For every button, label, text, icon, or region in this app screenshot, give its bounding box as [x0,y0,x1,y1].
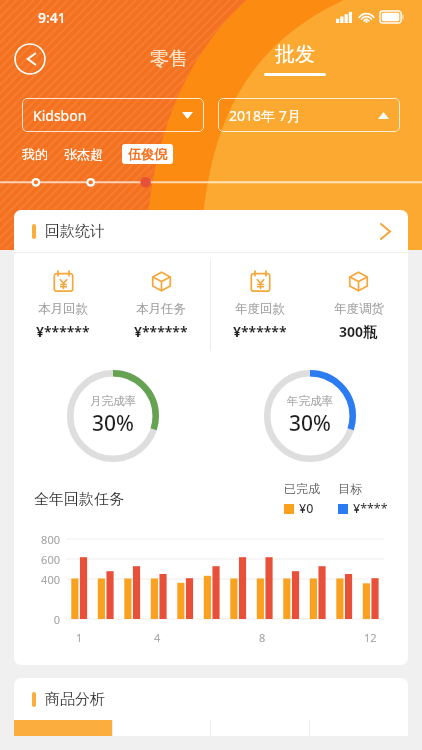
staticText: 零售 [150,47,188,71]
staticText: 600 [14,552,60,567]
button[interactable]: 零售 [138,43,200,75]
staticText: 12 [364,630,377,645]
button[interactable]: 2018年 7月 [218,98,400,132]
button[interactable]: Kidsbon [22,98,204,132]
button[interactable]: 本月任务 [112,253,210,357]
staticText: 400 [14,572,60,587]
staticText: 2018年 7月 [229,106,301,125]
button[interactable]: 张杰超 [64,146,103,162]
staticText: 4 [154,630,161,645]
button[interactable]: 回款统计 [14,210,408,252]
staticText: ¥****** [134,322,188,341]
staticText: 年度回款 [235,301,285,317]
staticText: 回款统计 [45,222,105,241]
button[interactable]: 批发 [254,42,336,76]
staticText: 年完成率 [287,394,333,408]
staticText: Kidsbon [33,106,87,125]
staticText: 全年回款任务 [34,490,124,509]
button[interactable]: Back [14,43,46,75]
staticText: 9:41 [38,8,66,27]
staticText: 本月回款 [38,301,88,317]
staticText: 伍俊倪 [128,146,167,162]
staticText: 8 [259,630,266,645]
staticText: 目标 [338,481,362,496]
button[interactable]: 本月回款 [14,253,112,357]
staticText: 年度调货 [334,301,384,317]
staticText: ¥**** [353,500,388,517]
staticText: 800 [14,532,60,547]
staticText: ¥0 [299,500,314,517]
staticText: ¥****** [233,322,287,341]
button[interactable]: 年度调货 [309,253,408,357]
staticText: 1 [76,630,83,645]
staticText: 批发 [275,42,315,67]
button[interactable]: 商品分析 [14,678,408,720]
staticText: 月完成率 [90,394,136,408]
staticText: 300瓶 [339,322,378,341]
button[interactable]: 我的 [22,146,48,162]
staticText: 已完成 [284,481,320,496]
staticText: 0 [14,612,60,627]
button[interactable]: 年度回款 [211,253,309,357]
staticText: 30% [289,409,331,438]
staticText: ¥****** [36,322,90,341]
staticText: 本月任务 [136,301,186,317]
button[interactable]: 伍俊倪 [122,144,173,164]
staticText: 30% [92,409,134,438]
staticText: 商品分析 [45,690,105,709]
